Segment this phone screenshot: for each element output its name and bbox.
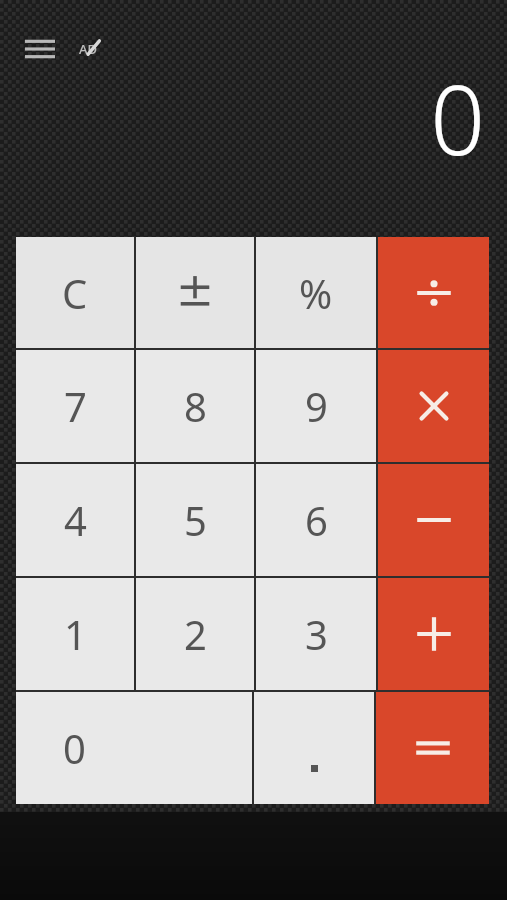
staticText: 0 xyxy=(63,721,86,775)
staticText: 7 xyxy=(64,379,87,433)
staticText: 3 xyxy=(305,607,328,661)
button[interactable]: 2 xyxy=(136,578,254,690)
staticText: 9 xyxy=(305,379,328,433)
button[interactable]: % xyxy=(256,237,376,348)
button[interactable]: 4 xyxy=(16,464,134,576)
button[interactable]: Equals xyxy=(376,692,489,804)
staticText: AD xyxy=(79,40,98,58)
button[interactable]: Edit AD xyxy=(66,30,110,68)
staticText: 2 xyxy=(184,607,207,661)
button[interactable] xyxy=(254,692,374,804)
button[interactable]: 9 xyxy=(256,350,376,462)
staticText: C xyxy=(62,266,88,320)
staticText: % xyxy=(299,266,333,320)
staticText: 0 xyxy=(430,52,485,183)
staticText: 5 xyxy=(184,493,207,547)
button[interactable]: 0 xyxy=(16,692,252,804)
button[interactable]: Multiply xyxy=(378,350,489,462)
staticText: 8 xyxy=(184,379,207,433)
button[interactable]: Subtract xyxy=(378,464,489,576)
button[interactable]: 7 xyxy=(16,350,134,462)
button[interactable] xyxy=(136,237,254,348)
button[interactable]: 3 xyxy=(256,578,376,690)
button[interactable]: Add xyxy=(378,578,489,690)
staticText: 1 xyxy=(64,607,87,661)
staticText: 6 xyxy=(305,493,328,547)
button[interactable]: Divide xyxy=(378,237,489,348)
button[interactable]: 1 xyxy=(16,578,134,690)
button[interactable]: 5 xyxy=(136,464,254,576)
staticText: 4 xyxy=(64,493,87,547)
button[interactable]: Menu xyxy=(18,30,62,68)
button[interactable]: C xyxy=(16,237,134,348)
button[interactable]: 8 xyxy=(136,350,254,462)
button[interactable]: 6 xyxy=(256,464,376,576)
